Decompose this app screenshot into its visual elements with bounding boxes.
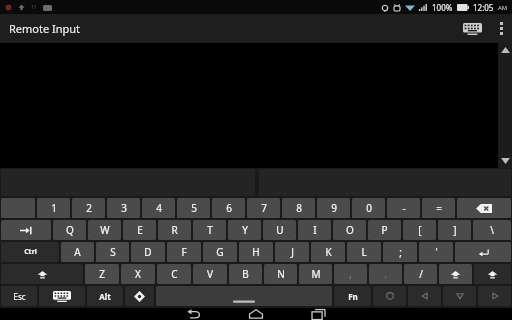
button[interactable]: , xyxy=(334,264,367,284)
button[interactable]: = xyxy=(422,198,455,218)
button[interactable]: Back xyxy=(163,308,225,320)
staticText: Q xyxy=(66,223,74,237)
button[interactable]: Left xyxy=(408,286,441,306)
button[interactable]: Scroll up xyxy=(498,43,512,57)
button[interactable]: W xyxy=(88,220,121,240)
button[interactable]: Shift right xyxy=(474,264,511,284)
staticText: Fn xyxy=(348,291,358,302)
button[interactable]: 3 xyxy=(107,198,140,218)
button[interactable]: [ xyxy=(403,220,436,240)
staticText: Z xyxy=(99,267,105,281)
button[interactable]: Scroll down xyxy=(498,154,512,168)
button[interactable]: E xyxy=(123,220,156,240)
button[interactable]: \ xyxy=(473,220,511,240)
button[interactable]: Q xyxy=(53,220,86,240)
button[interactable]: A xyxy=(61,242,94,262)
staticText: ' xyxy=(435,245,438,259)
button[interactable]: I xyxy=(298,220,331,240)
staticText: 3 xyxy=(121,201,127,215)
button[interactable]: H xyxy=(239,242,273,262)
button[interactable]: / xyxy=(404,264,437,284)
button[interactable]: B xyxy=(229,264,262,284)
staticText: U xyxy=(276,223,284,237)
staticText: - xyxy=(402,201,406,215)
button[interactable]: Down xyxy=(443,286,476,306)
button[interactable]: Show keyboard xyxy=(454,14,490,43)
button[interactable]: 2 xyxy=(72,198,105,218)
button[interactable]: Esc xyxy=(1,286,37,306)
button[interactable]: R xyxy=(158,220,191,240)
button[interactable]: - xyxy=(387,198,420,218)
button[interactable]: ] xyxy=(438,220,471,240)
staticText: 6 xyxy=(226,201,232,215)
button[interactable]: Alt xyxy=(87,286,123,306)
staticText: , xyxy=(349,267,352,281)
button[interactable]: C xyxy=(157,264,191,284)
button[interactable]: L xyxy=(347,242,381,262)
button[interactable]: 9 xyxy=(317,198,350,218)
staticText: 2 xyxy=(86,201,92,215)
staticText: W xyxy=(100,223,110,237)
staticText: E xyxy=(137,223,143,237)
staticText: 1 xyxy=(51,201,57,215)
staticText: H xyxy=(252,245,260,259)
button[interactable]: Tab xyxy=(1,220,51,240)
button[interactable]: M xyxy=(299,264,332,284)
button[interactable]: Y xyxy=(228,220,261,240)
button[interactable]: Ctrl xyxy=(1,242,59,262)
button[interactable]: Home xyxy=(225,308,287,320)
button[interactable]: Switch keyboard xyxy=(39,286,85,306)
button[interactable]: 1 xyxy=(37,198,70,218)
button[interactable]: 5 xyxy=(177,198,210,218)
staticText: 8 xyxy=(296,201,302,215)
button[interactable]: 0 xyxy=(352,198,385,218)
button[interactable]: . xyxy=(369,264,402,284)
button[interactable]: T xyxy=(193,220,226,240)
staticText: L xyxy=(361,245,367,259)
staticText: 12:05 xyxy=(473,2,494,13)
button[interactable]: More options xyxy=(490,14,512,43)
staticText: I xyxy=(313,223,317,237)
button[interactable]: F xyxy=(167,242,201,262)
staticText: AM xyxy=(498,4,508,12)
button[interactable]: Enter xyxy=(455,242,511,262)
button[interactable]: 6 xyxy=(212,198,245,218)
button[interactable]: N xyxy=(264,264,297,284)
button[interactable]: Recent apps xyxy=(287,308,349,320)
button[interactable]: ; xyxy=(383,242,417,262)
button[interactable]: Z xyxy=(85,264,119,284)
button[interactable]: Shift xyxy=(1,264,83,284)
button[interactable]: G xyxy=(203,242,237,262)
button[interactable]: O xyxy=(333,220,366,240)
button[interactable]: K xyxy=(311,242,345,262)
button[interactable]: Right xyxy=(478,286,511,306)
staticText: Ctrl xyxy=(24,247,37,257)
button[interactable]: Fn xyxy=(334,286,371,306)
button[interactable]: ' xyxy=(419,242,453,262)
button[interactable]: X xyxy=(121,264,155,284)
button[interactable]: J xyxy=(275,242,309,262)
button[interactable]: U xyxy=(263,220,296,240)
button[interactable]: 7 xyxy=(247,198,280,218)
button[interactable]: 8 xyxy=(282,198,315,218)
button[interactable]: 4 xyxy=(142,198,175,218)
staticText: 100% xyxy=(432,2,453,13)
button[interactable]: V xyxy=(193,264,227,284)
staticText: S xyxy=(110,245,116,259)
button[interactable]: P xyxy=(368,220,401,240)
button[interactable]: S xyxy=(96,242,129,262)
button[interactable]: Shift alt xyxy=(439,264,472,284)
button[interactable]: Language xyxy=(125,286,154,306)
staticText: P xyxy=(381,223,388,237)
button[interactable]: Space xyxy=(156,286,332,306)
staticText: 5 xyxy=(191,201,197,215)
button[interactable]: Backspace xyxy=(457,198,511,218)
staticText: D xyxy=(144,245,152,259)
button[interactable]: D xyxy=(131,242,165,262)
staticText: 0 xyxy=(366,201,372,215)
button[interactable]: Circle xyxy=(373,286,406,306)
